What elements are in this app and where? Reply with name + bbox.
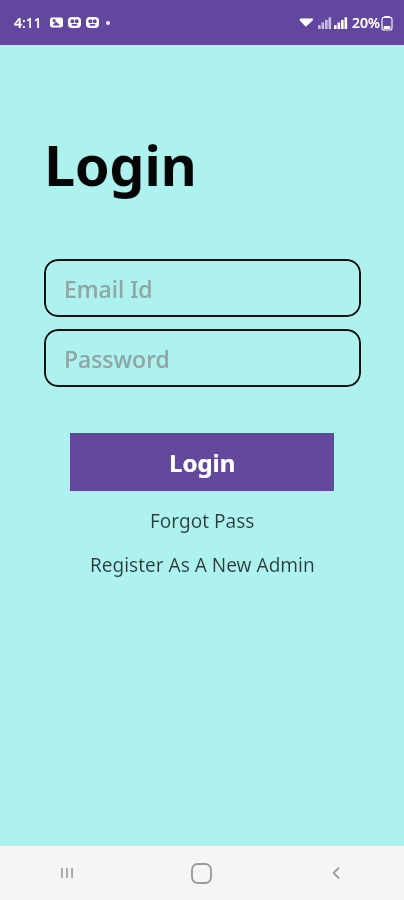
staticText: Email Id (64, 273, 153, 304)
button[interactable]: Home (134, 846, 269, 900)
staticText: Forgot Pass (150, 508, 255, 534)
staticText: 20% (352, 13, 380, 32)
staticText: 4:11 (14, 13, 42, 32)
button[interactable]: Login (70, 433, 334, 491)
button[interactable]: Back (269, 846, 404, 900)
button[interactable]: Forgot Pass (140, 505, 265, 537)
staticText: Login (169, 446, 236, 479)
staticText: Password (64, 343, 170, 374)
staticText: Login (44, 126, 197, 202)
button[interactable]: Recent apps (0, 846, 134, 900)
button[interactable]: Email Id (44, 259, 361, 317)
button[interactable]: Password (44, 329, 361, 387)
staticText: Register As A New Admin (90, 552, 315, 578)
button[interactable]: Register As A New Admin (80, 549, 325, 581)
